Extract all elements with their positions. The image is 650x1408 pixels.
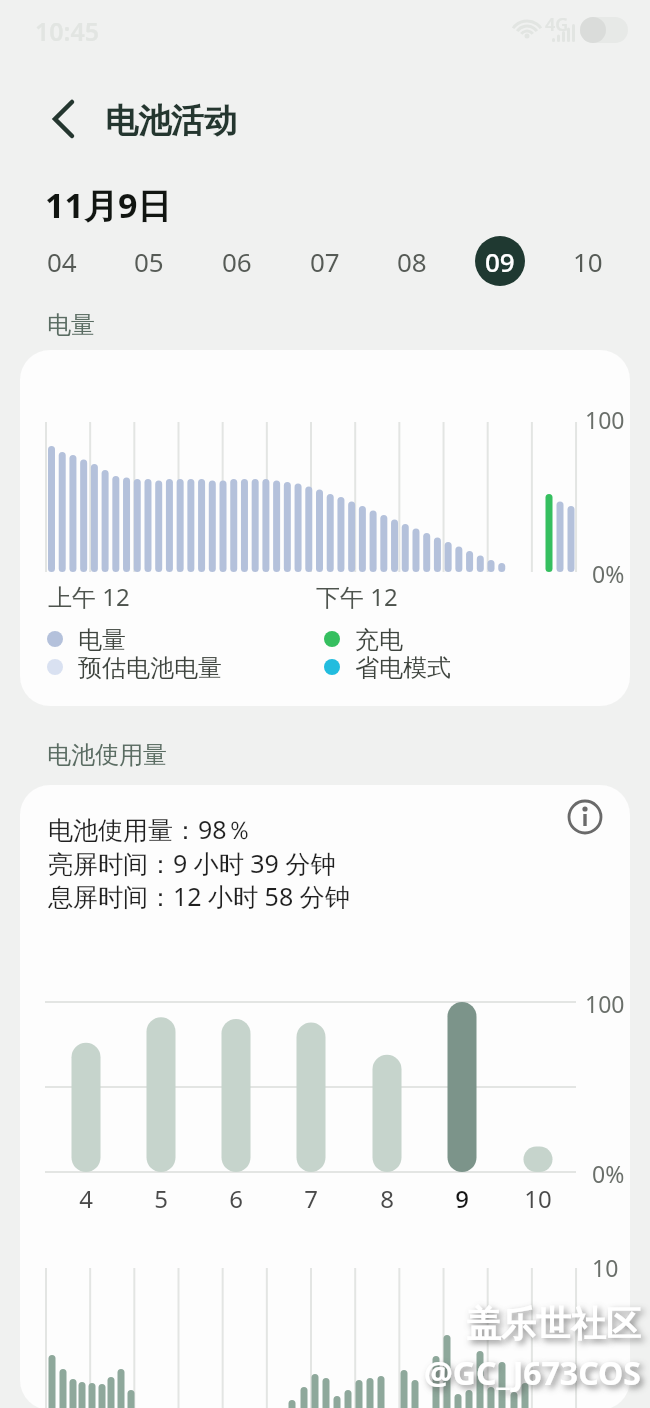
staticText: 100 [585, 404, 625, 435]
staticText: 07 [310, 244, 340, 279]
staticText: 10 [573, 244, 603, 279]
staticText: 电池活动 [105, 100, 237, 142]
button[interactable] [40, 95, 90, 145]
staticText: 上午 12 [48, 580, 130, 613]
button[interactable]: 05 [124, 236, 174, 286]
staticText: 04 [47, 244, 77, 279]
staticText: 06 [222, 244, 252, 279]
staticText: 电量 [78, 625, 126, 655]
staticText: 充电 [355, 625, 403, 655]
staticText: 4G [545, 12, 569, 37]
staticText: 电池使用量 [47, 740, 167, 770]
staticText: 10 [524, 1182, 552, 1215]
staticText: 电量 [47, 310, 95, 340]
staticText: 7 [304, 1182, 318, 1215]
staticText: 息屏时间：12 小时 58 分钟 [48, 879, 350, 913]
staticText: 盖乐世社区 [466, 1302, 641, 1346]
staticText: 5 [154, 1182, 168, 1215]
staticText: 11月9日 [45, 182, 172, 228]
staticText: 10:45 [35, 14, 100, 48]
staticText: 05 [134, 244, 164, 279]
staticText: 亮屏时间：9 小时 39 分钟 [48, 846, 336, 880]
staticText: 08 [397, 244, 427, 279]
button[interactable]: 10 [563, 236, 613, 286]
button[interactable]: 08 [387, 236, 437, 286]
button[interactable]: 06 [212, 236, 262, 286]
staticText: 电池使用量：98％ [48, 812, 252, 846]
staticText: 09 [485, 244, 515, 279]
staticText: 6 [229, 1182, 243, 1215]
staticText: 省电模式 [355, 653, 451, 683]
staticText: 8 [380, 1182, 394, 1215]
button[interactable]: 07 [300, 236, 350, 286]
staticText: 0% [592, 558, 625, 589]
staticText: 9 [455, 1182, 469, 1215]
staticText: 预估电池电量 [78, 653, 222, 683]
button[interactable]: 04 [37, 236, 87, 286]
staticText: @GC_J673COS [424, 1351, 641, 1395]
button[interactable] [20, 785, 630, 1408]
staticText: 下午 12 [316, 580, 398, 613]
button[interactable]: 09 [475, 236, 525, 286]
staticText: 10 [592, 1252, 619, 1283]
staticText: 100 [585, 988, 625, 1019]
staticText: 0% [592, 1158, 625, 1189]
staticText: 4 [79, 1182, 93, 1215]
